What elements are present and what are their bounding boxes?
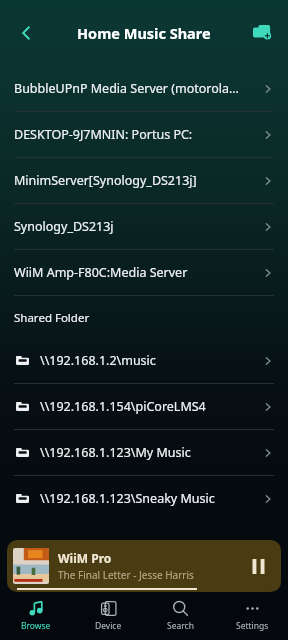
button[interactable]: Device	[72, 592, 144, 640]
staticText: MinimServer[Synology_DS213j]	[14, 172, 262, 189]
staticText: \\192.168.1.154\piCoreLMS4	[40, 398, 262, 415]
button[interactable]: MinimServer[Synology_DS213j]	[0, 158, 288, 203]
button[interactable]: Synology_DS213j	[0, 204, 288, 249]
staticText: Settings	[236, 620, 269, 632]
staticText: WiiM Pro	[58, 550, 112, 566]
staticText: Search	[167, 620, 194, 632]
staticText: WiiM Amp-F80C:Media Server	[14, 264, 262, 281]
staticText: BubbleUPnP Media Server (motorola…	[14, 80, 262, 97]
button[interactable]: Back	[6, 13, 46, 53]
staticText: Shared Folder	[14, 310, 90, 326]
staticText: Home Music Share	[77, 23, 211, 43]
staticText: Synology_DS213j	[14, 218, 262, 235]
button[interactable]: Search	[144, 592, 216, 640]
button[interactable]: Browse	[0, 592, 72, 640]
button[interactable]: Add server	[244, 15, 280, 51]
button[interactable]: DESKTOP-9J7MNIN: Portus PC:	[0, 112, 288, 157]
staticText: Browse	[21, 620, 51, 632]
button[interactable]: \\192.168.1.154\piCoreLMS4	[0, 384, 288, 429]
button[interactable]: WiiM Pro	[7, 540, 281, 592]
button[interactable]: Pause	[241, 549, 275, 583]
staticText: \\192.168.1.123\My Music	[40, 444, 262, 461]
button[interactable]: BubbleUPnP Media Server (motorola…	[0, 66, 288, 111]
button[interactable]: WiiM Amp-F80C:Media Server	[0, 250, 288, 295]
staticText: DESKTOP-9J7MNIN: Portus PC:	[14, 126, 262, 143]
staticText: The Final Letter - Jesse Harris	[58, 568, 194, 582]
staticText: \\192.168.1.123\Sneaky Music	[40, 490, 262, 507]
button[interactable]: \\192.168.1.2\music	[0, 338, 288, 383]
button[interactable]: \\192.168.1.123\My Music	[0, 430, 288, 475]
button[interactable]: \\192.168.1.123\Sneaky Music	[0, 476, 288, 521]
button[interactable]: Settings	[216, 592, 288, 640]
staticText: Device	[95, 620, 122, 632]
staticText: \\192.168.1.2\music	[40, 352, 262, 369]
